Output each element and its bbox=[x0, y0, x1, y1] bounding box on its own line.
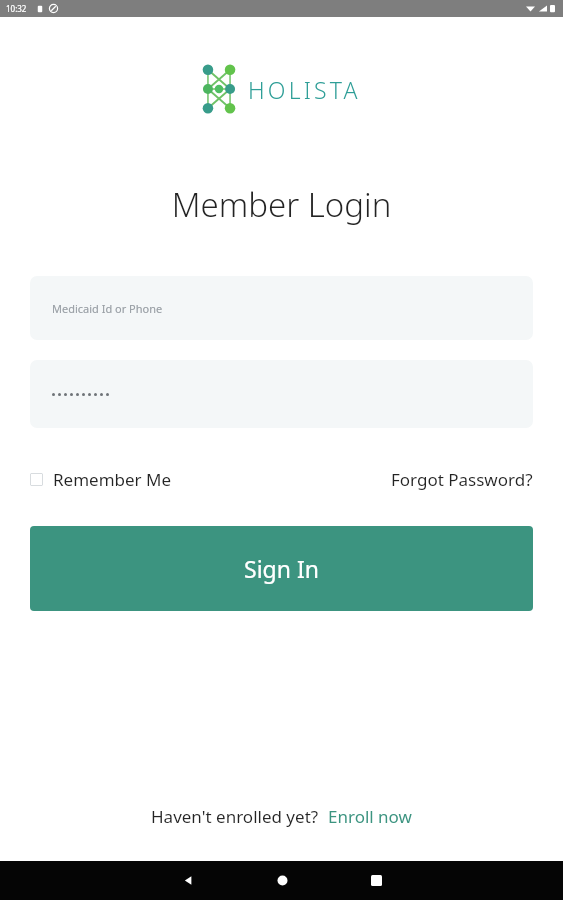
button[interactable]: Enroll now bbox=[328, 805, 412, 828]
button[interactable]: Forgot Password? bbox=[391, 468, 533, 491]
button[interactable]: Sign In bbox=[30, 526, 533, 611]
button[interactable]: Remember Me bbox=[30, 468, 172, 491]
staticText: Member Login bbox=[0, 182, 563, 227]
button[interactable]: Home bbox=[235, 861, 329, 900]
button[interactable]: Recents bbox=[329, 861, 423, 900]
button[interactable] bbox=[30, 360, 533, 428]
button[interactable]: Medicaid Id or Phone bbox=[30, 276, 533, 340]
staticText: HOLISTA bbox=[248, 74, 361, 105]
button[interactable]: Back bbox=[141, 861, 235, 900]
staticText: Haven't enrolled yet? bbox=[151, 805, 319, 828]
staticText: Sign In bbox=[244, 553, 319, 584]
staticText: 10:32 bbox=[6, 3, 27, 14]
staticText: Remember Me bbox=[53, 468, 172, 491]
other: Holista logo bbox=[202, 64, 236, 114]
staticText: Medicaid Id or Phone bbox=[52, 301, 163, 316]
